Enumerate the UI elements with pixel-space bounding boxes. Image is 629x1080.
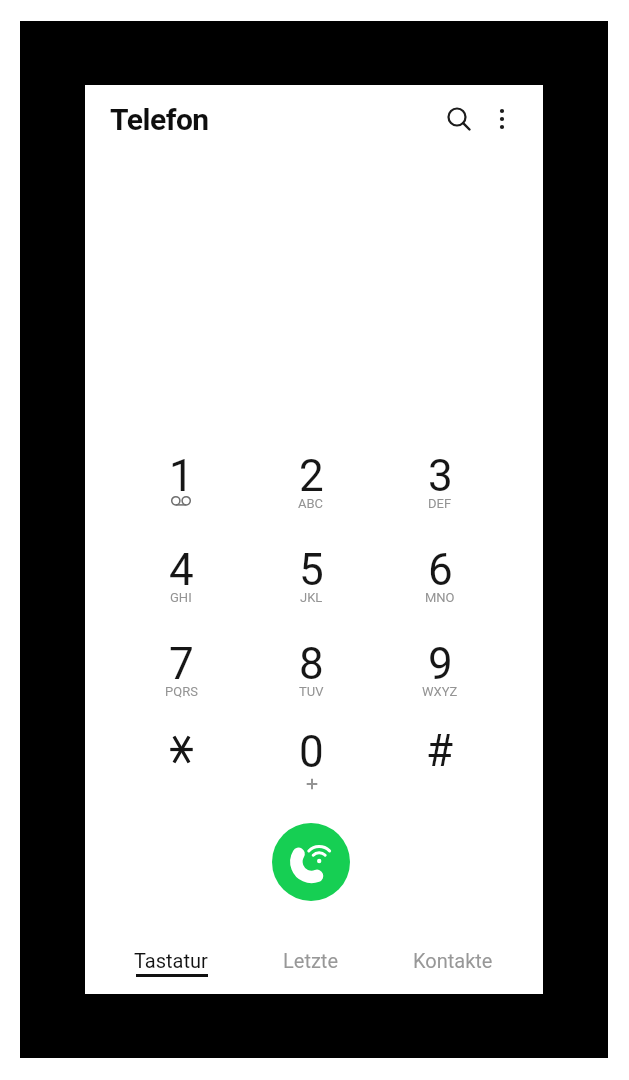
staticText: 3 [428, 450, 453, 502]
staticText: 8 [299, 638, 324, 690]
staticText: Letzte [283, 949, 338, 972]
button[interactable]: # [383, 709, 497, 789]
staticText: Kontakte [413, 949, 493, 972]
staticText: Telefon [110, 102, 209, 137]
button[interactable]: 7 [124, 622, 238, 704]
button[interactable]: 2 [254, 434, 368, 516]
staticText: Tastatur [134, 949, 208, 972]
staticText: 4 [169, 544, 194, 596]
staticText: 1 [169, 450, 194, 502]
staticText: # [426, 725, 454, 777]
button[interactable]: 9 [383, 622, 497, 704]
button[interactable]: 5 [254, 528, 368, 610]
staticText: MNO [425, 590, 455, 605]
button[interactable] [272, 823, 350, 901]
staticText: WXYZ [422, 684, 458, 699]
staticText: GHI [170, 590, 192, 605]
staticText: 7 [169, 638, 194, 690]
button[interactable]: 4 [124, 528, 238, 610]
staticText: 6 [428, 544, 453, 596]
button[interactable]: Letzte [260, 934, 361, 986]
staticText: 0 [299, 726, 324, 778]
staticText: DEF [428, 496, 452, 511]
button[interactable]: Tastatur [120, 934, 222, 986]
staticText: 9 [428, 638, 453, 690]
button[interactable]: 6 [383, 528, 497, 610]
staticText: PQRS [165, 684, 198, 699]
staticText: 2 [299, 450, 324, 502]
button[interactable] [436, 97, 480, 141]
button[interactable] [484, 97, 522, 141]
button[interactable] [124, 709, 238, 789]
staticText: TUV [299, 684, 324, 699]
staticText: ABC [298, 496, 324, 511]
staticText: JKL [300, 590, 323, 605]
staticText: 5 [299, 544, 324, 596]
button[interactable]: 0 [254, 710, 368, 792]
button[interactable]: 1 [124, 434, 238, 516]
button[interactable]: Kontakte [402, 934, 504, 986]
button[interactable]: 8 [254, 622, 368, 704]
button[interactable]: 3 [383, 434, 497, 516]
